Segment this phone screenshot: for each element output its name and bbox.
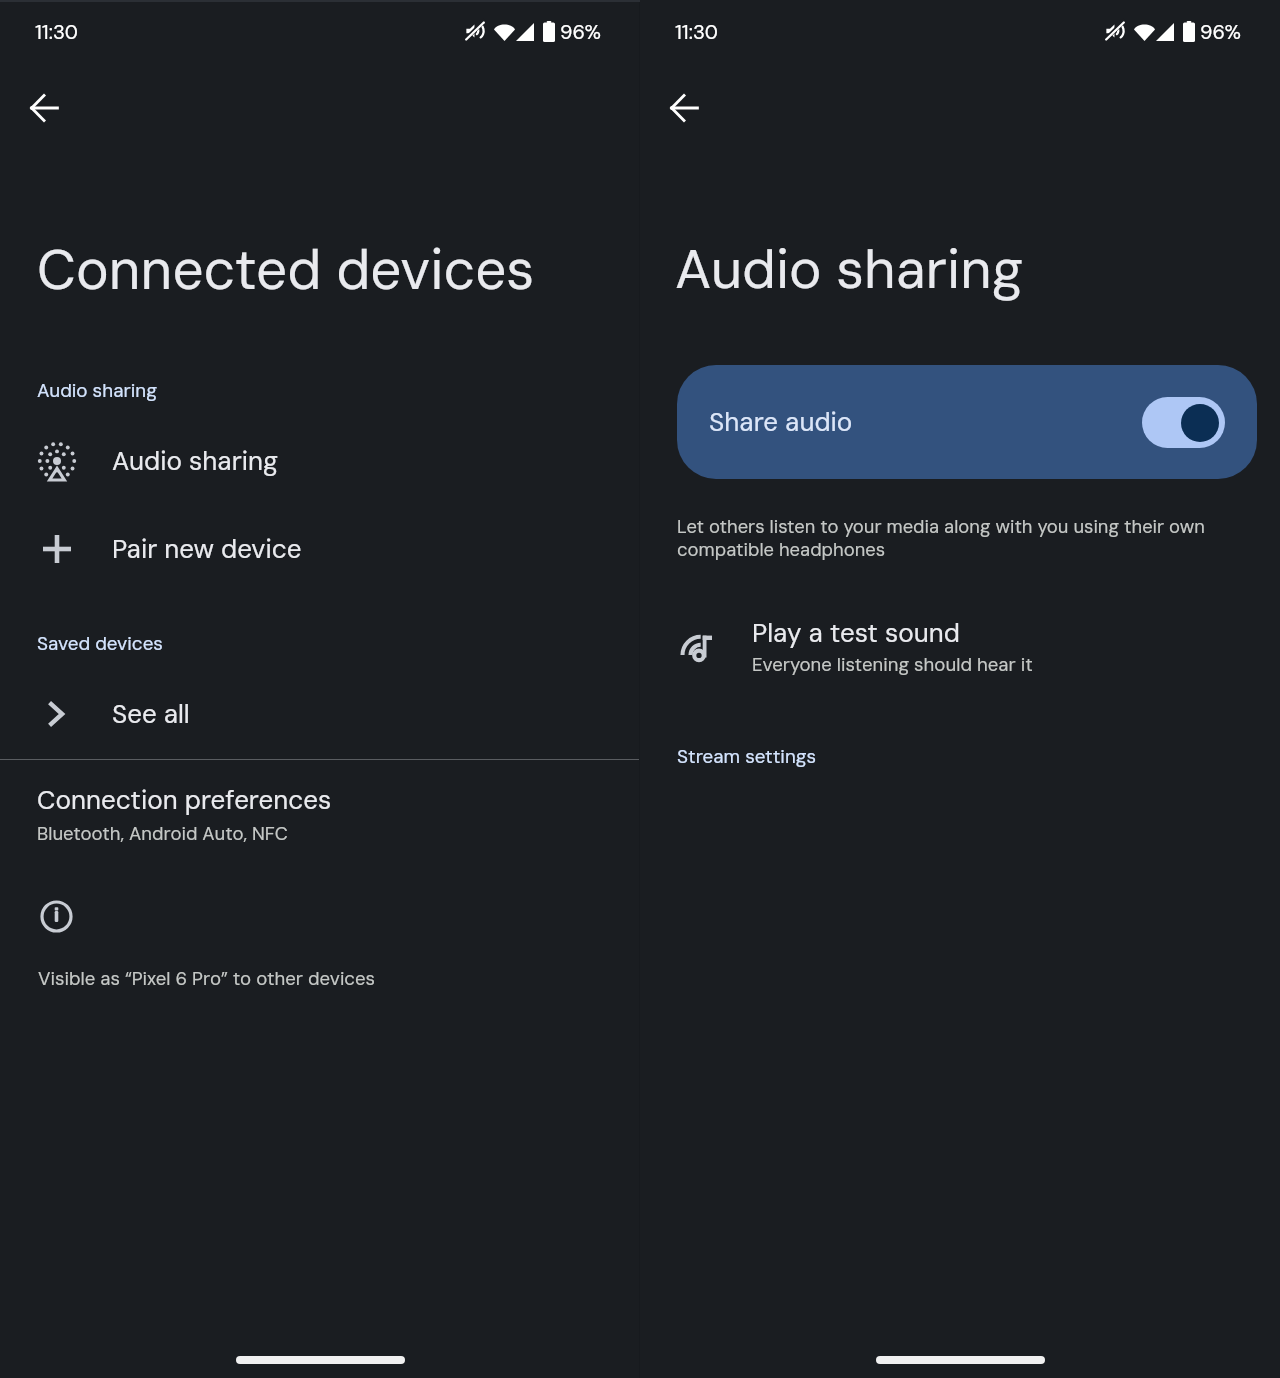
staticText: Connected devices: [37, 234, 535, 306]
staticText: Pair new device: [112, 532, 302, 566]
staticText: Stream settings: [677, 744, 817, 768]
staticText: Everyone listening should hear it: [752, 653, 1033, 677]
button[interactable]: Back: [15, 79, 72, 136]
button[interactable]: Back: [655, 79, 712, 136]
staticText: Let others listen to your media along wi…: [677, 515, 1217, 562]
staticText: 96%: [560, 19, 602, 45]
button[interactable]: Share audio: [677, 365, 1257, 479]
button[interactable]: Connection preferences: [0, 775, 640, 858]
staticText: 11:30: [675, 19, 718, 45]
button[interactable]: Pair new device: [0, 510, 640, 588]
staticText: 96%: [1200, 19, 1242, 45]
staticText: Connection preferences: [37, 783, 332, 817]
button[interactable]: Audio sharing: [0, 422, 640, 500]
staticText: See all: [112, 697, 190, 731]
staticText: Saved devices: [37, 631, 163, 655]
staticText: 11:30: [35, 19, 78, 45]
staticText: Share audio: [709, 405, 853, 439]
staticText: Play a test sound: [752, 616, 960, 650]
staticText: Audio sharing: [112, 444, 279, 478]
staticText: Audio sharing: [675, 234, 1023, 305]
staticText: Bluetooth, Android Auto, NFC: [37, 822, 288, 846]
staticText: Audio sharing: [37, 378, 158, 402]
staticText: Visible as “Pixel 6 Pro” to other device…: [38, 967, 376, 991]
button[interactable]: See all: [0, 675, 640, 753]
button[interactable]: Play a test sound: [640, 607, 1280, 685]
